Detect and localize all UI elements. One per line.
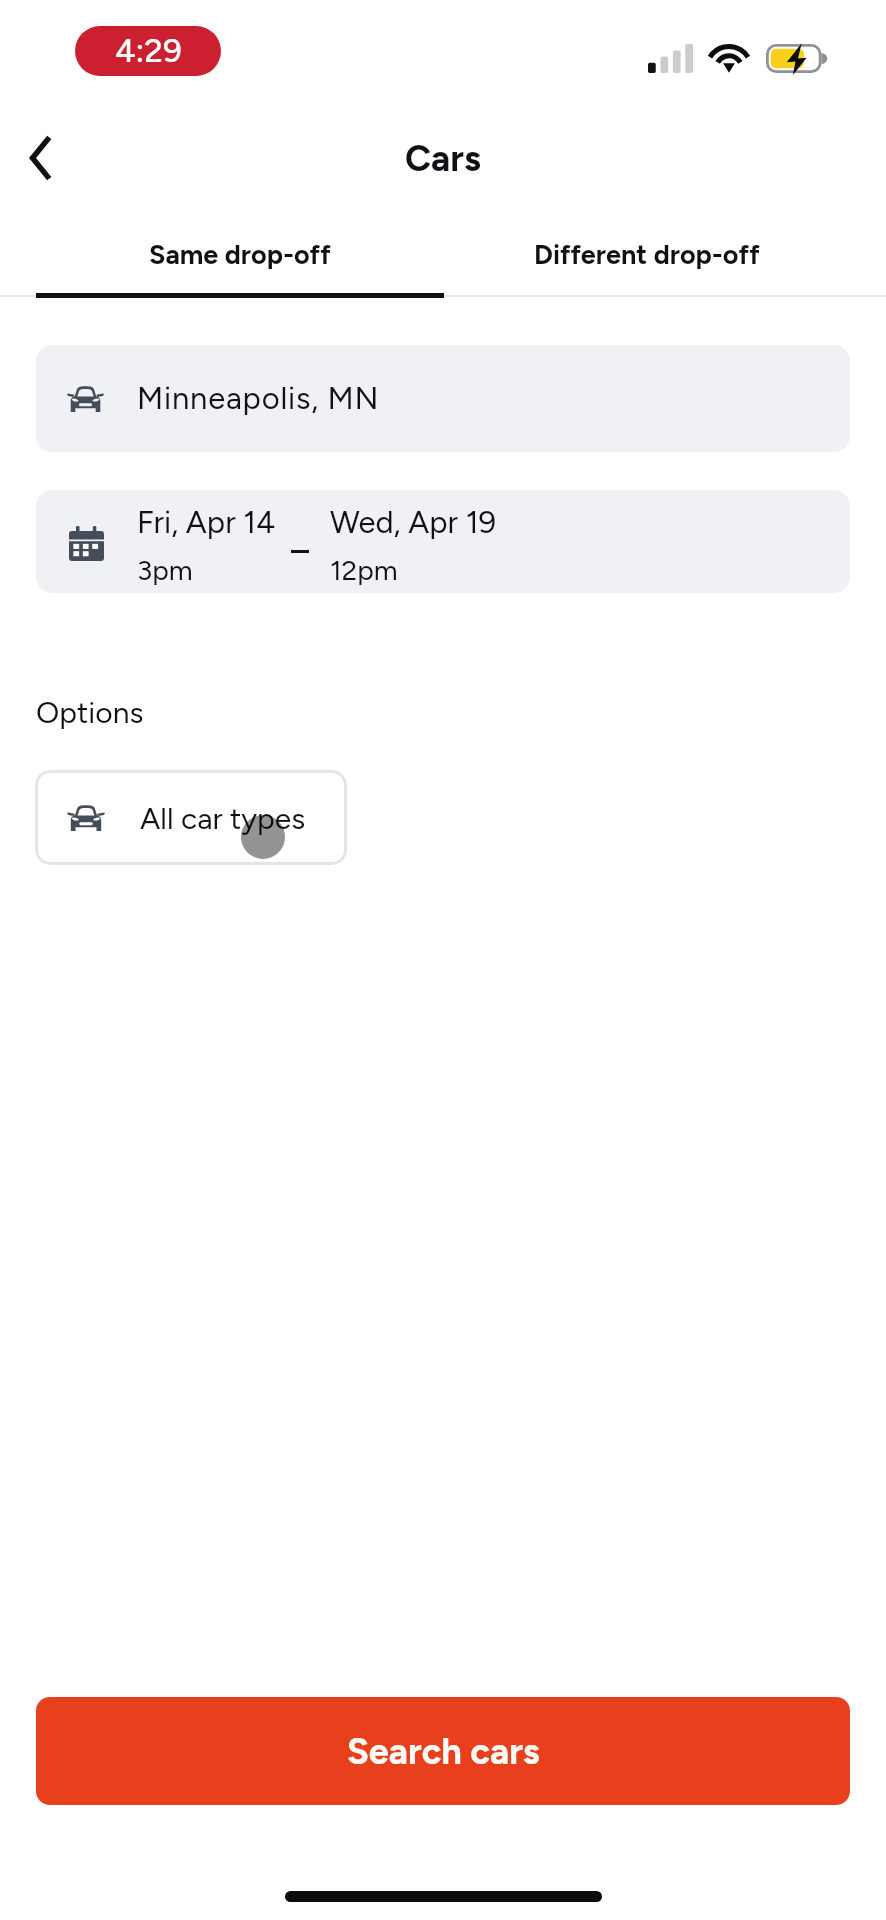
staticText: Wed, Apr 19 bbox=[330, 504, 497, 541]
staticText: 4:29 bbox=[115, 31, 182, 71]
button[interactable]: Back bbox=[6, 134, 74, 182]
staticText: Options bbox=[36, 694, 144, 730]
staticText: 3pm bbox=[137, 553, 193, 587]
button[interactable]: Minneapolis, MN bbox=[36, 345, 850, 452]
staticText: Same drop-off bbox=[149, 238, 331, 270]
button[interactable]: Different drop-off bbox=[443, 221, 850, 287]
staticText: All car types bbox=[140, 800, 306, 836]
button[interactable]: Fri, Apr 14 bbox=[36, 490, 850, 593]
button[interactable]: Same drop-off bbox=[36, 221, 443, 287]
staticText: Fri, Apr 14 bbox=[137, 504, 276, 541]
button[interactable]: All car types bbox=[35, 770, 347, 865]
staticText: Minneapolis, MN bbox=[137, 380, 380, 417]
button[interactable]: Search cars bbox=[36, 1697, 850, 1805]
staticText: Cars bbox=[405, 137, 481, 180]
staticText: Search cars bbox=[347, 1730, 540, 1773]
staticText: Different drop-off bbox=[534, 238, 760, 270]
staticText: 12pm bbox=[330, 553, 398, 587]
